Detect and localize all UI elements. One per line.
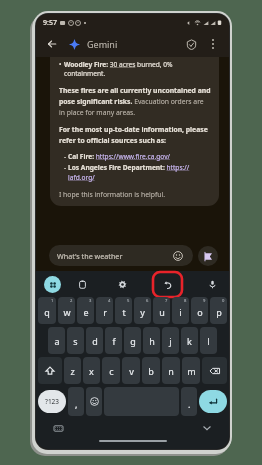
staticText: These fires are all currently uncontaine… (59, 86, 211, 117)
staticText: z (70, 365, 75, 377)
button[interactable]: ?123 (38, 390, 66, 413)
staticText: m (187, 365, 196, 377)
button[interactable]: Enter (199, 390, 227, 413)
button[interactable]: x (83, 357, 100, 384)
staticText: I hope this information is helpful. (59, 190, 166, 199)
button[interactable]: Hide keyboard (199, 420, 215, 436)
staticText: o (197, 306, 203, 318)
button[interactable]: 5 (115, 297, 132, 324)
button[interactable]: m (182, 357, 200, 384)
staticText: f (112, 335, 116, 347)
button[interactable]: 6 (134, 297, 151, 324)
button[interactable]: 1 (38, 297, 56, 324)
button[interactable]: More options (204, 35, 222, 53)
button[interactable]: Clipboard (74, 276, 91, 293)
button[interactable]: Back (43, 35, 61, 53)
button[interactable]: k (181, 327, 198, 354)
button[interactable]: 2 (58, 297, 75, 324)
staticText: y (140, 306, 145, 318)
staticText: • (59, 60, 64, 69)
button[interactable]: c (102, 357, 120, 384)
staticText: 4 (108, 298, 111, 304)
staticText: n (168, 365, 174, 377)
staticText: - (64, 163, 68, 172)
button[interactable]: h (143, 327, 160, 354)
staticText: 6 (146, 298, 149, 304)
button[interactable]: a (48, 327, 65, 354)
staticText: Gemini (87, 38, 118, 50)
button[interactable]: Voice input (204, 276, 221, 293)
staticText: 1 (51, 298, 54, 304)
staticText: h (149, 335, 155, 347)
staticText: q (44, 306, 50, 318)
staticText: s (73, 335, 78, 347)
button[interactable]: Comma (68, 387, 84, 416)
staticText: 2 (70, 298, 73, 304)
staticText: 8 (184, 298, 187, 304)
button[interactable]: Keyboard apps (44, 276, 61, 293)
button[interactable]: Switch keyboard (50, 420, 66, 436)
staticText: b (148, 365, 154, 377)
staticText: ?123 (45, 397, 60, 406)
button[interactable]: Emoji (171, 249, 185, 263)
button[interactable]: j (162, 327, 179, 354)
staticText: - (64, 152, 68, 161)
button[interactable]: z (64, 357, 81, 384)
staticText: , (75, 398, 78, 410)
staticText: k (187, 335, 192, 347)
button[interactable]: 9 (191, 297, 208, 324)
button[interactable]: l (200, 327, 217, 354)
staticText: w (63, 306, 71, 318)
staticText: 5 (127, 298, 130, 304)
staticText: c (109, 365, 114, 377)
button[interactable]: b (142, 357, 160, 384)
button[interactable]: Undo (159, 276, 176, 293)
button[interactable]: What's the weather (49, 245, 193, 266)
button[interactable]: Emoji (86, 387, 102, 416)
staticText: 3 (89, 298, 92, 304)
button[interactable]: g (124, 327, 141, 354)
staticText: What's the weather (57, 251, 123, 261)
button[interactable]: Shift (38, 357, 62, 384)
button[interactable]: Send (198, 246, 218, 266)
staticText: x (89, 365, 94, 377)
button[interactable]: 8 (172, 297, 189, 324)
staticText: a (54, 335, 60, 347)
button[interactable]: Period (181, 387, 197, 416)
button[interactable]: s (67, 327, 84, 354)
button[interactable]: Backspace (202, 357, 227, 384)
staticText: Los Angeles Fire Department: https://laf… (68, 163, 211, 182)
staticText: 9 (203, 298, 206, 304)
button[interactable]: Privacy shield (182, 35, 200, 53)
staticText: v (129, 365, 134, 377)
staticText: u (159, 306, 165, 318)
staticText: e (83, 306, 89, 318)
button[interactable]: Settings (114, 276, 131, 293)
staticText: . (188, 398, 191, 410)
staticText: For the most up-to-date information, ple… (59, 125, 211, 145)
staticText: 7 (165, 298, 168, 304)
staticText: g (130, 335, 136, 347)
staticText: Cal Fire: https://www.fire.ca.gov/ (68, 152, 170, 161)
button[interactable]: n (162, 357, 180, 384)
button[interactable]: v (122, 357, 140, 384)
button[interactable]: 3 (77, 297, 94, 324)
button[interactable]: 0 (210, 297, 227, 324)
staticText: d (92, 335, 98, 347)
button[interactable]: 4 (96, 297, 113, 324)
button[interactable]: 7 (153, 297, 170, 324)
staticText: l (207, 335, 210, 347)
staticText: 9:57 (43, 18, 57, 28)
staticText: p (216, 306, 222, 318)
staticText: 0 (222, 298, 225, 304)
staticText: Woodley Fire: 30 acres burned, 0% contai… (64, 60, 211, 78)
button[interactable]: f (105, 327, 122, 354)
button[interactable]: d (86, 327, 103, 354)
staticText: j (169, 335, 172, 347)
staticText: t (122, 306, 126, 318)
staticText: r (103, 306, 107, 318)
staticText: i (179, 306, 182, 318)
